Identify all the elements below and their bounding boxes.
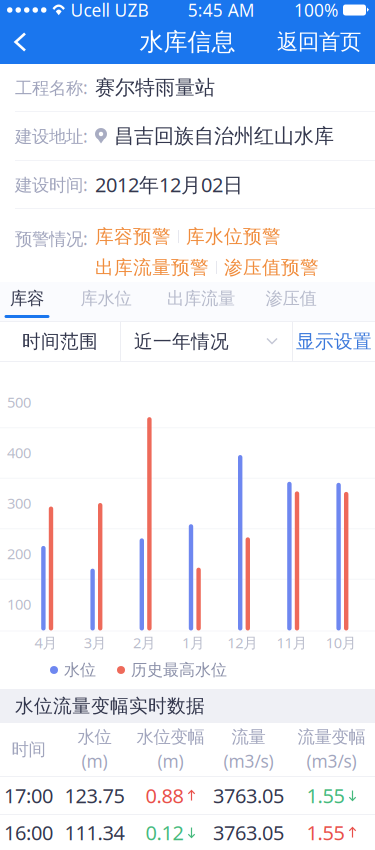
staticText: 水位变幅 [136, 726, 204, 748]
staticText: 历史最高水位 [131, 660, 227, 680]
staticText: 预警情况: [15, 227, 88, 250]
staticText: (m) [81, 750, 107, 773]
staticText: 昌吉回族自治州红山水库 [114, 124, 334, 148]
button[interactable]: 渗压值 [247, 282, 335, 315]
button[interactable]: 显示设置 [293, 322, 375, 361]
staticText: 0.12 [145, 819, 183, 846]
staticText: 3763.05 [213, 819, 284, 846]
staticText: (m3/s) [223, 750, 273, 773]
staticText: 赛尔特雨量站 [95, 75, 215, 100]
button[interactable]: 时间范围 [0, 322, 120, 361]
staticText: 时间 [11, 739, 45, 760]
staticText: 建设地址: [15, 124, 88, 147]
staticText: (m) [157, 750, 183, 773]
staticText: 0.88 [145, 782, 183, 809]
staticText: 10月 [326, 633, 357, 652]
button[interactable]: Back [0, 20, 42, 64]
staticText: 返回首页 [277, 29, 361, 55]
staticText: 5:45 AM [188, 0, 255, 21]
staticText: 111.34 [64, 819, 124, 846]
staticText: 渗压值预警 [224, 256, 319, 279]
staticText: (m3/s) [306, 750, 356, 773]
staticText: 100% [294, 0, 338, 21]
button[interactable]: 库水位预警 [186, 225, 281, 248]
button[interactable]: 返回首页 [263, 20, 375, 64]
staticText: 水库信息 [139, 27, 235, 57]
staticText: 出库流量预警 [95, 256, 209, 279]
staticText: 3月 [84, 633, 107, 652]
staticText: 123.75 [64, 782, 124, 809]
staticText: 库容 [10, 288, 44, 309]
staticText: 渗压值 [265, 288, 316, 309]
staticText: 库水位 [80, 288, 131, 309]
staticText: 1.55 [306, 819, 344, 846]
staticText: 出库流量 [167, 288, 235, 309]
staticText: 流量 [231, 726, 265, 748]
staticText: 2月 [133, 633, 156, 652]
staticText: 12月 [227, 633, 258, 652]
staticText: 1月 [182, 633, 205, 652]
staticText: 1.55 [306, 782, 344, 809]
staticText: Ucell UZB [70, 0, 148, 21]
staticText: 11月 [276, 633, 307, 652]
button[interactable]: 库容预警 [95, 225, 171, 248]
staticText: 100 [7, 594, 31, 614]
button[interactable]: 库水位 [62, 282, 150, 315]
staticText: 400 [7, 443, 31, 462]
staticText: 工程名称: [15, 76, 88, 99]
staticText: 流量变幅 [297, 726, 365, 748]
button[interactable]: 渗压值预警 [224, 256, 319, 279]
staticText: 水位 [64, 660, 96, 680]
staticText: 近一年情况 [134, 330, 229, 353]
staticText: 17:00 [4, 782, 53, 809]
staticText: 库水位预警 [186, 225, 281, 248]
staticText: 建设时间: [15, 173, 88, 196]
staticText: 时间范围 [22, 330, 98, 353]
button[interactable]: 出库流量预警 [95, 256, 209, 279]
staticText: 水位流量变幅实时数据 [15, 694, 205, 717]
staticText: 水位 [77, 726, 111, 748]
staticText: 16:00 [4, 819, 53, 846]
staticText: 500 [7, 392, 31, 412]
staticText: 3763.05 [213, 782, 284, 809]
button[interactable]: 库容 [0, 282, 71, 315]
button[interactable]: 出库流量 [157, 282, 245, 315]
button[interactable]: 近一年情况 [121, 322, 292, 361]
staticText: 2012年12月02日 [95, 171, 243, 198]
staticText: 4月 [34, 633, 57, 652]
staticText: 显示设置 [296, 330, 372, 353]
staticText: 库容预警 [95, 225, 171, 248]
staticText: 300 [7, 493, 31, 513]
staticText: 200 [7, 544, 31, 563]
